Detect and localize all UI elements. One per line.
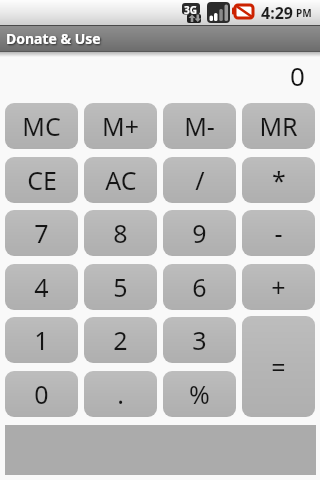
button[interactable]: / (163, 157, 236, 203)
button[interactable]: 7 (5, 210, 78, 256)
staticText: PM (296, 6, 312, 20)
button[interactable]: 1 (5, 317, 78, 363)
staticText: 4:29 (261, 2, 293, 24)
button[interactable]: % (163, 371, 236, 417)
staticText: 1 (34, 323, 49, 357)
staticText: MC (22, 109, 61, 143)
button[interactable]: MR (242, 103, 315, 149)
staticText: M+ (102, 109, 139, 143)
button[interactable]: 3 (163, 317, 236, 363)
staticText: / (195, 163, 205, 197)
button[interactable]: 6 (163, 264, 236, 310)
button[interactable]: MC (5, 103, 78, 149)
staticText: MR (259, 109, 298, 143)
button[interactable]: 4 (5, 264, 78, 310)
staticText: CE (27, 163, 57, 197)
staticText: 0 (34, 377, 49, 411)
staticText: 8 (113, 216, 128, 250)
button[interactable]: + (242, 264, 315, 310)
staticText: 9 (192, 216, 207, 250)
staticText: + (271, 270, 286, 304)
button[interactable]: 2 (84, 317, 157, 363)
button[interactable]: . (84, 371, 157, 417)
button[interactable]: CE (5, 157, 78, 203)
button[interactable]: * (242, 157, 315, 203)
button[interactable]: AC (84, 157, 157, 203)
button[interactable]: = (242, 316, 315, 417)
staticText: % (189, 377, 210, 411)
staticText: * (272, 163, 286, 197)
staticText: 0 (290, 58, 305, 93)
staticText: 2 (113, 323, 128, 357)
button[interactable]: 5 (84, 264, 157, 310)
staticText: AC (105, 163, 137, 197)
button[interactable]: M+ (84, 103, 157, 149)
button[interactable]: M- (163, 103, 236, 149)
staticText: 5 (113, 270, 128, 304)
staticText: = (271, 350, 286, 384)
button[interactable]: 9 (163, 210, 236, 256)
staticText: 7 (34, 216, 49, 250)
button[interactable]: 0 (5, 371, 78, 417)
button[interactable]: - (242, 210, 315, 256)
staticText: . (117, 377, 124, 411)
staticText: 4 (34, 270, 49, 304)
staticText: 3 (192, 323, 207, 357)
staticText: - (274, 216, 283, 250)
staticText: 6 (192, 270, 207, 304)
staticText: M- (184, 109, 215, 143)
staticText: 3G (184, 3, 197, 17)
button[interactable]: 8 (84, 210, 157, 256)
staticText: Donate & Use (6, 29, 101, 48)
